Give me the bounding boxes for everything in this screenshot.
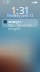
staticText: Messages — [8, 20, 21, 24]
staticText: 1:31 — [11, 4, 29, 17]
staticText: Hey — still on for tonight? — [8, 24, 32, 31]
button[interactable]: Messages — [2, 19, 38, 27]
staticText: 1:31 — [3, 1, 10, 4]
staticText: Thursday, June 12 — [6, 14, 33, 17]
